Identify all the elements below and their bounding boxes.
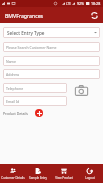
staticText: Email Id bbox=[6, 99, 20, 104]
button[interactable]: Telephone bbox=[3, 83, 67, 93]
staticText: Logout bbox=[85, 176, 95, 180]
button[interactable]: Refresh bbox=[88, 9, 100, 21]
staticText: LTE bbox=[66, 2, 71, 6]
button[interactable]: Customer Details bbox=[0, 164, 25, 183]
button[interactable]: Address bbox=[3, 69, 100, 79]
button[interactable]: Please Search Customer Name bbox=[3, 42, 100, 52]
staticText: Address bbox=[6, 72, 20, 77]
staticText: Customer Details bbox=[1, 176, 25, 180]
staticText: Select Entry Type bbox=[7, 30, 45, 36]
button[interactable]: Take photo bbox=[69, 83, 93, 106]
button[interactable]: Email Id bbox=[3, 96, 67, 106]
button[interactable]: Add product bbox=[35, 109, 43, 117]
staticText: 18:28 bbox=[91, 1, 101, 6]
button[interactable]: Sample Entry bbox=[25, 164, 51, 183]
staticText: Product Details bbox=[3, 111, 29, 116]
button[interactable]: Select Entry Type bbox=[3, 27, 100, 38]
button[interactable]: Name bbox=[3, 56, 100, 66]
staticText: BMVFragrances bbox=[5, 12, 44, 19]
staticText: 92% bbox=[77, 1, 85, 6]
staticText: Telephone bbox=[6, 86, 24, 91]
staticText: Sample Entry bbox=[29, 176, 47, 180]
button[interactable]: Logout bbox=[77, 164, 103, 183]
staticText: Please Search Customer Name bbox=[6, 45, 57, 50]
staticText: View Product bbox=[55, 176, 73, 180]
staticText: Name bbox=[6, 59, 16, 64]
button[interactable]: View Product bbox=[51, 164, 77, 183]
